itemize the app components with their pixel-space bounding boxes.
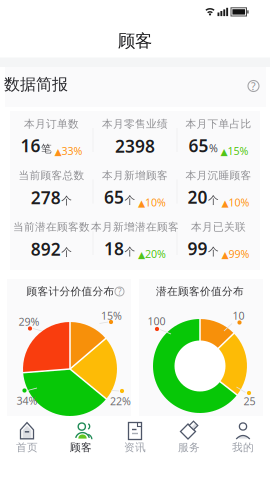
staticText: ▲: [54, 146, 61, 157]
staticText: 278: [31, 186, 61, 209]
staticText: 2398: [115, 134, 155, 157]
staticText: 资讯: [124, 441, 146, 454]
staticText: 个: [61, 246, 72, 259]
staticText: 个: [208, 245, 219, 258]
staticText: 18: [104, 237, 124, 260]
staticText: ?: [251, 79, 256, 93]
staticText: 本月已关联: [191, 220, 246, 233]
staticText: 当前潜在顾客数: [13, 220, 90, 233]
staticText: 65: [188, 134, 208, 157]
staticText: 个: [124, 194, 135, 207]
button[interactable]: 首页: [0, 416, 54, 464]
staticText: 15%: [227, 144, 248, 158]
staticText: 15%: [101, 308, 122, 323]
staticText: 34%: [16, 393, 37, 408]
staticText: 20: [187, 186, 207, 209]
button[interactable]: 资讯: [108, 416, 162, 464]
staticText: ?: [118, 286, 121, 297]
staticText: 本月新增潜在顾客: [91, 220, 179, 233]
staticText: 当前顾客总数: [18, 169, 84, 182]
staticText: 首页: [16, 441, 38, 454]
staticText: 数据简报: [4, 75, 68, 94]
staticText: 22%: [110, 394, 131, 408]
staticText: 个: [61, 194, 72, 207]
staticText: 16: [20, 134, 40, 157]
staticText: 顾客: [70, 441, 92, 454]
staticText: 892: [31, 237, 61, 260]
button[interactable]: 我的: [216, 416, 270, 464]
staticText: 25: [243, 394, 255, 408]
staticText: 10%: [145, 195, 166, 209]
button[interactable]: 顾客: [54, 416, 108, 464]
staticText: 笔: [41, 142, 52, 155]
staticText: 本月下单占比: [185, 117, 251, 130]
staticText: ▲: [221, 249, 228, 260]
staticText: 本月新增顾客: [102, 169, 168, 182]
staticText: 99%: [228, 247, 249, 261]
staticText: 个: [208, 194, 219, 207]
staticText: 99: [187, 237, 207, 260]
staticText: 29%: [18, 314, 39, 329]
staticText: 65: [104, 186, 124, 209]
staticText: 潜在顾客价值分布: [156, 285, 244, 298]
staticText: 100: [147, 314, 165, 328]
staticText: 10%: [228, 195, 249, 209]
staticText: ▲: [220, 146, 227, 157]
button[interactable]: ?: [113, 285, 125, 297]
staticText: 我的: [232, 441, 254, 454]
button[interactable]: 服务: [162, 416, 216, 464]
staticText: 本月订单数: [24, 117, 79, 130]
staticText: 本月零售业绩: [102, 117, 168, 130]
staticText: 个: [124, 245, 135, 258]
staticText: 顾客计分价值分布: [26, 285, 114, 298]
staticText: 33%: [61, 144, 82, 158]
staticText: ▲: [138, 198, 145, 209]
staticText: %: [209, 141, 218, 155]
staticText: 20%: [145, 247, 166, 261]
button[interactable]: ?: [245, 78, 261, 94]
staticText: 本月沉睡顾客: [185, 169, 251, 182]
staticText: 服务: [178, 441, 200, 454]
staticText: 10: [232, 308, 244, 323]
staticText: 顾客: [118, 30, 152, 52]
staticText: ▲: [138, 249, 145, 260]
staticText: ▲: [221, 198, 228, 209]
